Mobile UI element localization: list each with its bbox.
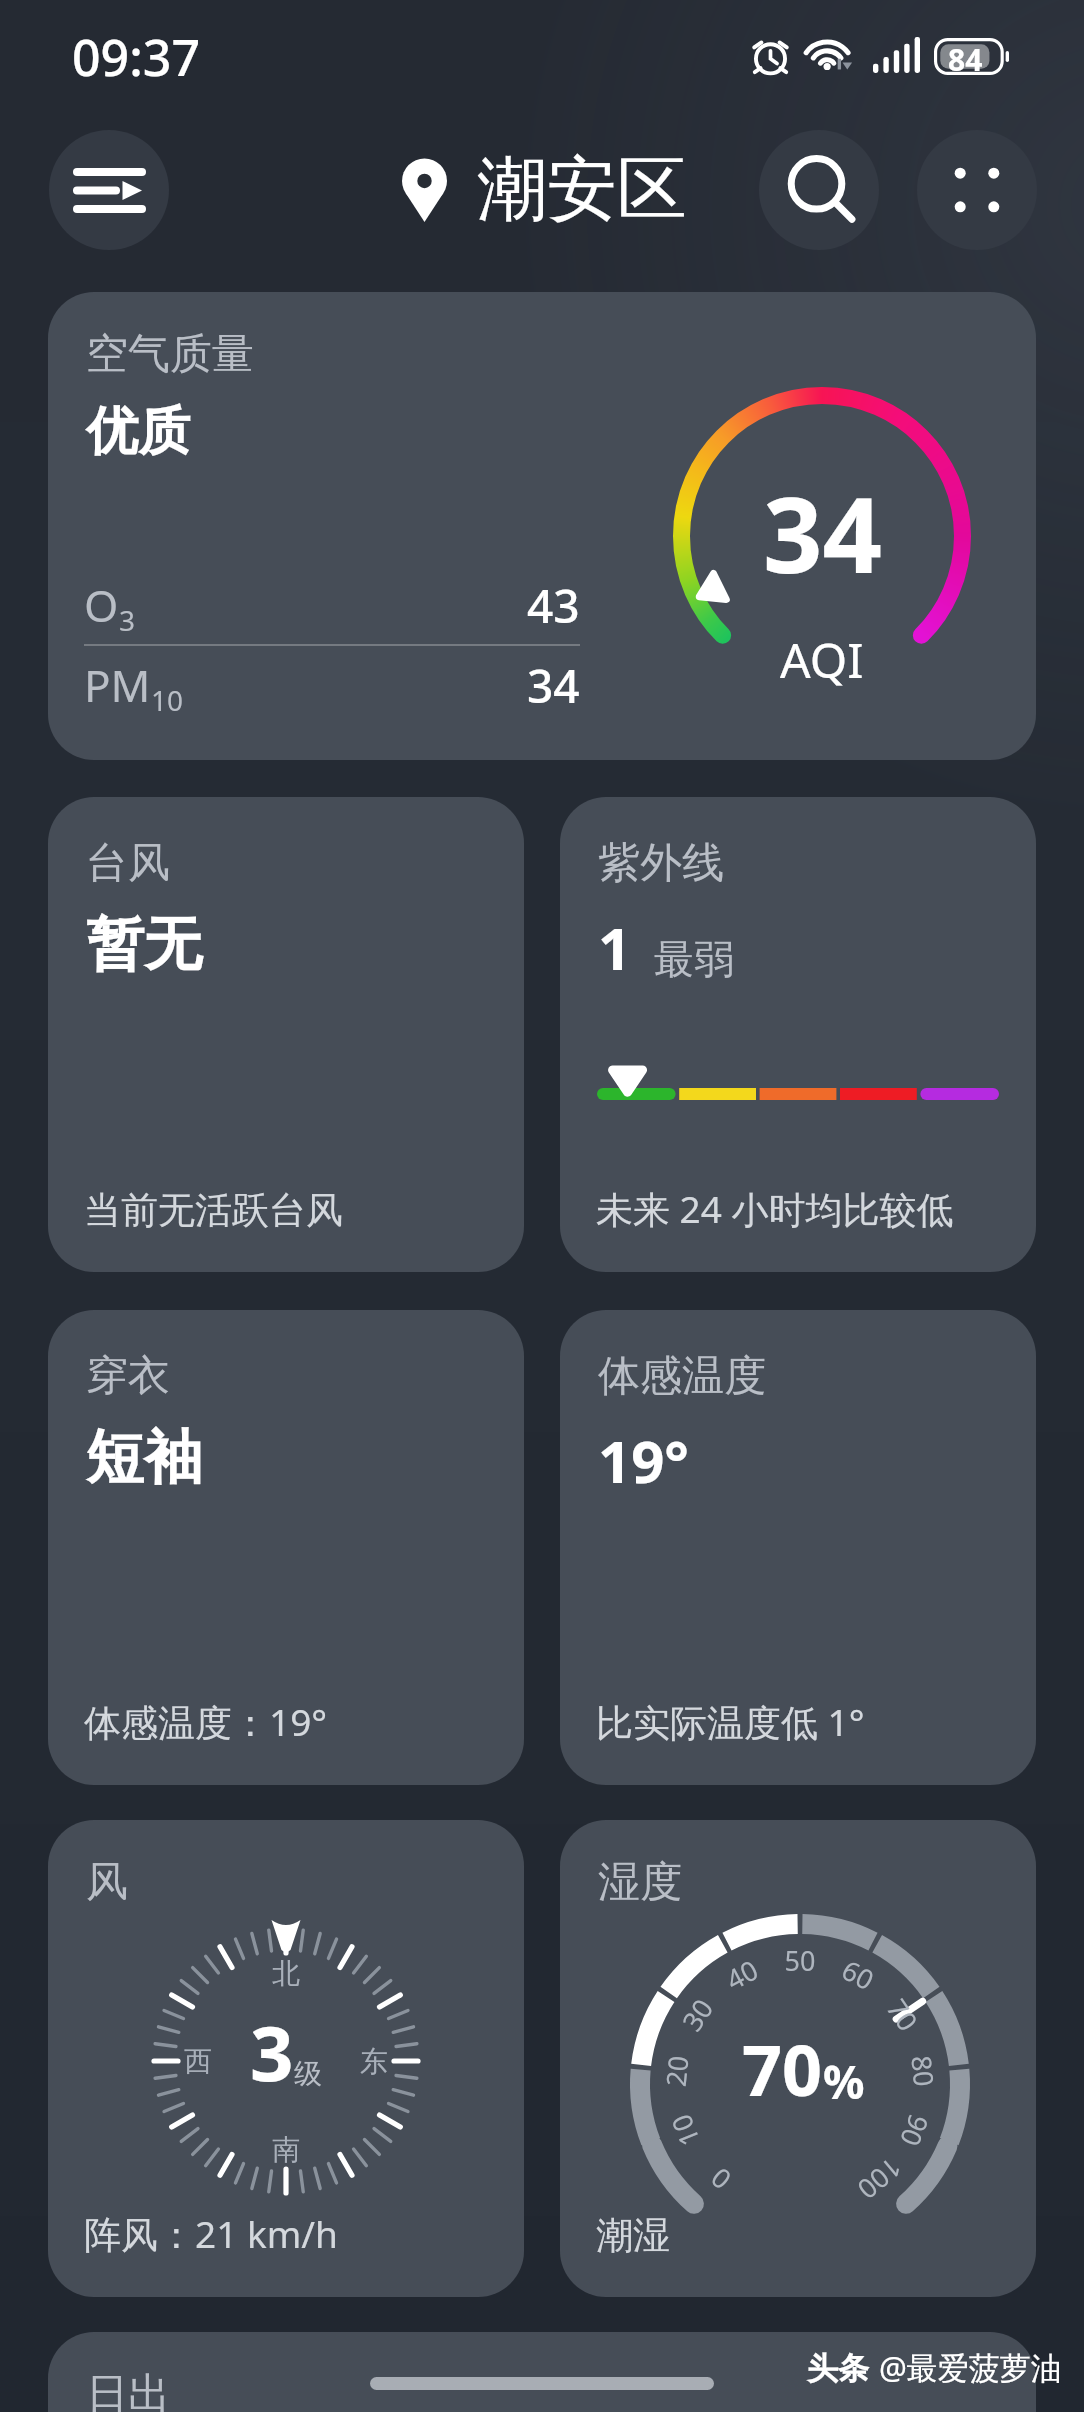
button[interactable]: 风 bbox=[48, 1820, 524, 2297]
staticText: PM bbox=[84, 655, 151, 715]
staticText: 3 bbox=[119, 601, 136, 639]
button[interactable]: 日出 bbox=[48, 2332, 1036, 2412]
staticText: 未来 24 小时均比较低 bbox=[596, 1183, 954, 1234]
staticText: 优质 bbox=[86, 399, 190, 465]
staticText: 阵风：21 km/h bbox=[84, 2208, 338, 2259]
button[interactable]: Search bbox=[759, 130, 879, 250]
staticText: @最爱菠萝油 bbox=[879, 2346, 1062, 2388]
staticText: 最弱 bbox=[654, 934, 734, 984]
staticText: 风 bbox=[86, 1856, 128, 1909]
staticText: 体感温度 bbox=[598, 1350, 766, 1403]
staticText: 紫外线 bbox=[598, 837, 724, 890]
staticText: 3 bbox=[250, 2000, 294, 2104]
staticText: 70 bbox=[742, 2021, 823, 2116]
staticText: O bbox=[84, 575, 119, 635]
staticText: 84 bbox=[948, 39, 983, 76]
staticText: 体感温度：19° bbox=[84, 1696, 328, 1747]
staticText: 当前无活跃台风 bbox=[84, 1187, 343, 1234]
button[interactable]: More options bbox=[917, 130, 1037, 250]
staticText: 级 bbox=[294, 2056, 322, 2091]
staticText: 台风 bbox=[86, 837, 170, 890]
staticText: 暂无 bbox=[86, 908, 202, 981]
staticText: 34 bbox=[763, 462, 882, 604]
staticText: 10 bbox=[151, 681, 184, 719]
staticText: 短袖 bbox=[86, 1421, 202, 1494]
staticText: 比实际温度低 1° bbox=[596, 1696, 865, 1747]
staticText: 19° bbox=[598, 1421, 689, 1500]
staticText: 潮湿 bbox=[596, 2212, 670, 2259]
staticText: 日出 bbox=[86, 2368, 170, 2412]
staticText: 穿衣 bbox=[86, 1350, 170, 1403]
staticText: 空气质量 bbox=[86, 328, 254, 381]
button[interactable]: 台风 bbox=[48, 797, 524, 1272]
staticText: 潮安区 bbox=[477, 146, 687, 234]
button[interactable]: 空气质量 bbox=[48, 292, 1036, 760]
staticText: 1 bbox=[598, 908, 632, 987]
button[interactable]: 湿度 bbox=[560, 1820, 1036, 2297]
staticText: 34 bbox=[527, 654, 580, 717]
button[interactable]: 体感温度 bbox=[560, 1310, 1036, 1785]
button[interactable]: 紫外线 bbox=[560, 797, 1036, 1272]
staticText: % bbox=[823, 2050, 865, 2113]
staticText: AQI bbox=[780, 627, 864, 692]
staticText: 湿度 bbox=[598, 1856, 682, 1909]
button[interactable]: Menu bbox=[49, 130, 169, 250]
button[interactable]: 穿衣 bbox=[48, 1310, 524, 1785]
staticText: 43 bbox=[527, 574, 580, 637]
staticText: 头条 bbox=[807, 2349, 869, 2388]
staticText: 09:37 bbox=[72, 23, 200, 91]
